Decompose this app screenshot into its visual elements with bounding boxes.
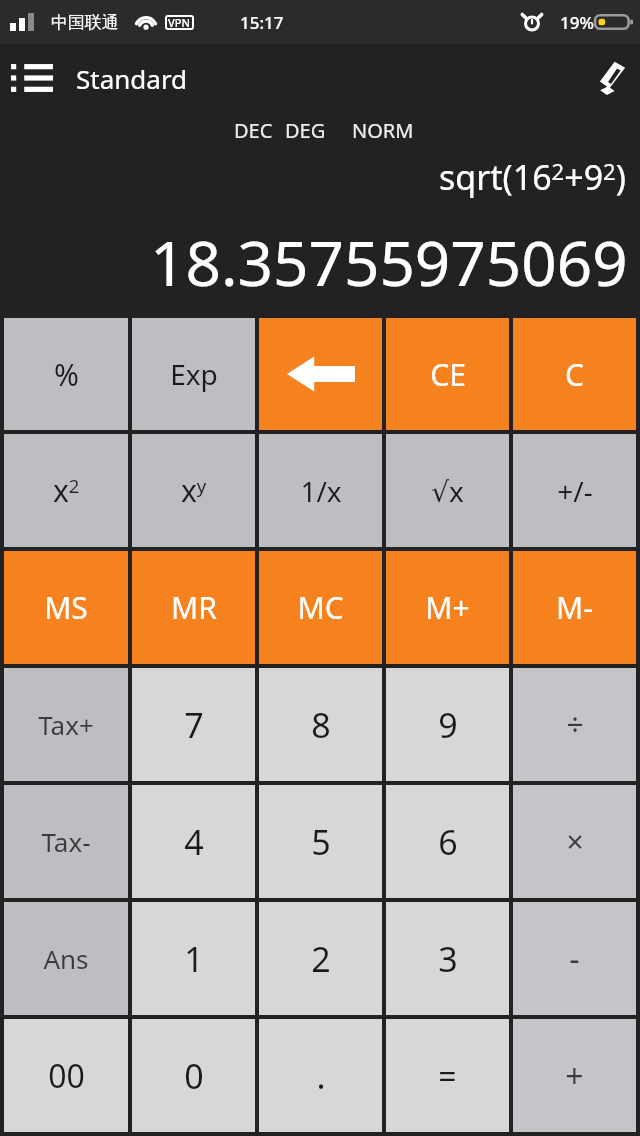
button[interactable]: Backspace [259, 318, 382, 430]
staticText: = [438, 1054, 457, 1098]
staticText: × [566, 821, 584, 862]
button[interactable]: C [513, 318, 636, 430]
button[interactable]: - [513, 902, 636, 1015]
staticText: . [316, 1053, 326, 1099]
button[interactable]: CE [386, 318, 509, 430]
button[interactable]: MR [132, 551, 255, 664]
button[interactable]: 2 [259, 902, 382, 1015]
staticText: 15:17 [240, 11, 284, 34]
button[interactable]: 1 [132, 902, 255, 1015]
staticText: Tax+ [38, 707, 94, 742]
button[interactable]: 3 [386, 902, 509, 1015]
staticText: xy [181, 470, 207, 511]
staticText: 18.35755975069 [150, 220, 628, 304]
staticText: x2 [53, 470, 80, 511]
staticText: 1 [184, 936, 204, 982]
staticText: 00 [48, 1054, 85, 1098]
button[interactable]: x2 [4, 434, 128, 547]
staticText: 2 [311, 936, 331, 982]
button[interactable]: 5 [259, 785, 382, 898]
button[interactable]: 1/x [259, 434, 382, 547]
staticText: 8 [311, 702, 331, 748]
staticText: 19% [560, 11, 594, 34]
staticText: √x [431, 472, 464, 510]
staticText: 7 [184, 702, 204, 748]
button[interactable]: Tax- [4, 785, 128, 898]
staticText: 6 [438, 819, 458, 865]
button[interactable]: 0 [132, 1019, 255, 1132]
button[interactable]: MC [259, 551, 382, 664]
button[interactable]: 4 [132, 785, 255, 898]
staticText: - [569, 937, 580, 981]
staticText: sqrt(162+92) [439, 154, 626, 200]
button[interactable]: 6 [386, 785, 509, 898]
staticText: MC [297, 587, 344, 628]
button[interactable]: . [259, 1019, 382, 1132]
staticText: + [565, 1054, 584, 1098]
button[interactable]: √x [386, 434, 509, 547]
button[interactable]: Tax+ [4, 668, 128, 781]
staticText: 0 [184, 1053, 204, 1099]
staticText: VPN [168, 15, 191, 30]
button[interactable]: M+ [386, 551, 509, 664]
staticText: MR [171, 587, 217, 628]
button[interactable]: MS [4, 551, 128, 664]
staticText: M- [556, 587, 593, 628]
button[interactable]: = [386, 1019, 509, 1132]
button[interactable]: 7 [132, 668, 255, 781]
staticText: DEC [234, 117, 273, 144]
button[interactable]: xy [132, 434, 255, 547]
button[interactable]: Highlighter [582, 47, 640, 109]
staticText: 1/x [300, 472, 342, 510]
staticText: 中国联通 [51, 12, 119, 33]
staticText: 5 [311, 819, 331, 865]
staticText: M+ [425, 587, 470, 628]
staticText: Ans [43, 941, 89, 976]
button[interactable]: ÷ [513, 668, 636, 781]
button[interactable]: % [4, 318, 128, 430]
button[interactable]: × [513, 785, 636, 898]
staticText: Exp [170, 355, 218, 393]
staticText: CE [430, 354, 466, 395]
button[interactable]: +/- [513, 434, 636, 547]
button[interactable]: M- [513, 551, 636, 664]
staticText: Standard [76, 61, 188, 96]
staticText: +/- [557, 472, 593, 510]
staticText: ÷ [566, 704, 584, 745]
staticText: Tax- [41, 824, 91, 859]
staticText: MS [44, 587, 88, 628]
staticText: NORM [352, 117, 414, 144]
button[interactable]: 9 [386, 668, 509, 781]
staticText: DEG [285, 117, 326, 144]
button[interactable]: 00 [4, 1019, 128, 1132]
button[interactable]: Open mode list [0, 53, 70, 103]
staticText: 3 [438, 936, 458, 982]
button[interactable]: Ans [4, 902, 128, 1015]
button[interactable]: Exp [132, 318, 255, 430]
button[interactable]: + [513, 1019, 636, 1132]
staticText: % [54, 354, 79, 395]
staticText: C [565, 354, 584, 395]
staticText: 4 [184, 819, 204, 865]
staticText: 9 [438, 702, 458, 748]
button[interactable]: 8 [259, 668, 382, 781]
